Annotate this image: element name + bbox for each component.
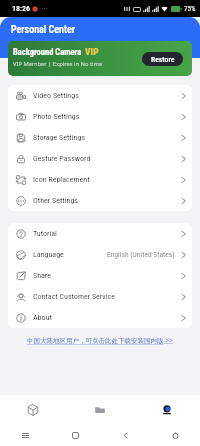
staticText: Tutorial <box>33 229 57 238</box>
staticText: Language <box>33 250 64 259</box>
button[interactable]: Me <box>133 395 200 424</box>
button[interactable]: Tutorial <box>8 223 192 244</box>
staticText: 75% <box>184 5 196 13</box>
button[interactable]: Files <box>66 395 133 424</box>
staticText: Other Settings <box>33 196 78 205</box>
staticText: Background Camera <box>13 47 82 57</box>
button[interactable]: Back <box>100 424 150 446</box>
button[interactable]: Storage Settings <box>8 127 192 148</box>
staticText: Video Settings <box>33 91 79 100</box>
button[interactable]: Photo Settings <box>8 106 192 127</box>
button[interactable]: Gesture Password <box>8 148 192 169</box>
button[interactable]: Video Settings <box>8 85 192 106</box>
button[interactable]: Home <box>50 424 100 446</box>
staticText: Share <box>33 271 51 280</box>
staticText: Restore <box>151 55 175 64</box>
staticText: Storage Settings <box>33 133 86 142</box>
staticText: About <box>33 313 52 322</box>
button[interactable]: Background Camera <box>8 41 192 76</box>
button[interactable]: Share <box>8 265 192 286</box>
staticText: VIP Member | Expires in No time <box>13 60 103 68</box>
button[interactable]: Language <box>8 244 192 265</box>
staticText: English (United States) <box>107 250 175 259</box>
button[interactable]: Restore <box>142 52 183 66</box>
button[interactable]: Contact Customer Service <box>8 286 192 307</box>
button[interactable]: Other Settings <box>8 190 192 211</box>
button[interactable]: Recent apps <box>0 424 50 446</box>
staticText: 18:26 <box>12 4 31 13</box>
staticText: Gesture Password <box>33 154 91 163</box>
staticText: Icon Replacement <box>33 175 90 184</box>
button[interactable]: Icon Replacement <box>8 169 192 190</box>
button[interactable]: 中国大陆地区用户，可点击此处下载安装国内版 >> <box>27 336 173 345</box>
button[interactable]: About <box>8 307 192 328</box>
staticText: VIP <box>85 46 99 57</box>
staticText: Contact Customer Service <box>33 292 116 301</box>
button[interactable]: Recorder <box>0 395 66 424</box>
staticText: Photo Settings <box>33 112 80 121</box>
staticText: Personal Center <box>11 24 75 36</box>
button[interactable]: Assistant <box>150 424 200 446</box>
